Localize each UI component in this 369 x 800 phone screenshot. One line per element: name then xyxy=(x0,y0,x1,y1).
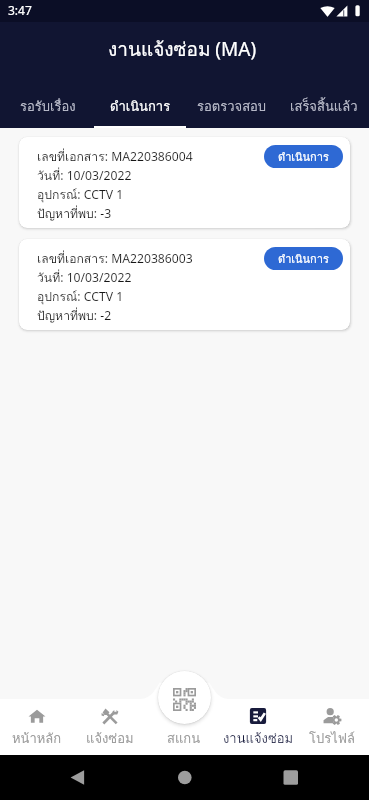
staticText: ดำเนินการ xyxy=(110,96,171,117)
staticText: ดำเนินการ xyxy=(278,250,329,267)
staticText: ปัญหาที่พบ: -3 xyxy=(37,204,112,223)
button[interactable]: ดำเนินการ xyxy=(264,247,343,270)
button[interactable]: รอตรวจสอบ xyxy=(186,80,278,128)
button[interactable]: ดำเนินการ xyxy=(94,80,186,128)
staticText: วันที่: 10/03/2022 xyxy=(37,268,132,287)
button[interactable]: สแกน xyxy=(147,699,221,755)
staticText: อุปกรณ์: CCTV 1 xyxy=(37,287,124,306)
staticText: สแกน xyxy=(167,728,201,749)
staticText: วันที่: 10/03/2022 xyxy=(37,166,132,185)
staticText: 3:47 xyxy=(8,2,32,18)
staticText: อุปกรณ์: CCTV 1 xyxy=(37,185,124,204)
staticText: รอตรวจสอบ xyxy=(197,96,267,117)
button[interactable]: หน้าหลัก xyxy=(0,699,73,755)
button[interactable]: โปรไฟล์ xyxy=(295,699,369,755)
staticText: แจ้งซ่อม xyxy=(86,728,134,749)
staticText: เลขที่เอกสาร: MA220386003 xyxy=(37,249,193,268)
button[interactable]: เลขที่เอกสาร: MA220386004 xyxy=(19,137,350,228)
button[interactable]: เสร็จสิ้นแล้ว xyxy=(278,80,369,128)
staticText: เสร็จสิ้นแล้ว xyxy=(290,96,358,117)
staticText: รอรับเรื่อง xyxy=(20,96,76,117)
staticText: งานแจ้งซ่อม xyxy=(223,728,294,749)
button[interactable]: เลขที่เอกสาร: MA220386003 xyxy=(19,239,350,330)
staticText: ดำเนินการ xyxy=(278,148,329,165)
staticText: โปรไฟล์ xyxy=(309,728,355,749)
other: System navigation xyxy=(0,755,369,800)
button[interactable]: Scan QR code xyxy=(158,671,211,724)
button[interactable]: แจ้งซ่อม xyxy=(73,699,147,755)
staticText: หน้าหลัก xyxy=(12,728,62,749)
staticText: เลขที่เอกสาร: MA220386004 xyxy=(37,147,193,166)
button[interactable]: รอรับเรื่อง xyxy=(2,80,94,128)
staticText: งานแจ้งซ่อม (MA) xyxy=(108,34,257,64)
button[interactable]: งานแจ้งซ่อม xyxy=(221,699,295,755)
button[interactable]: ดำเนินการ xyxy=(264,145,343,168)
staticText: ปัญหาที่พบ: -2 xyxy=(37,306,112,325)
